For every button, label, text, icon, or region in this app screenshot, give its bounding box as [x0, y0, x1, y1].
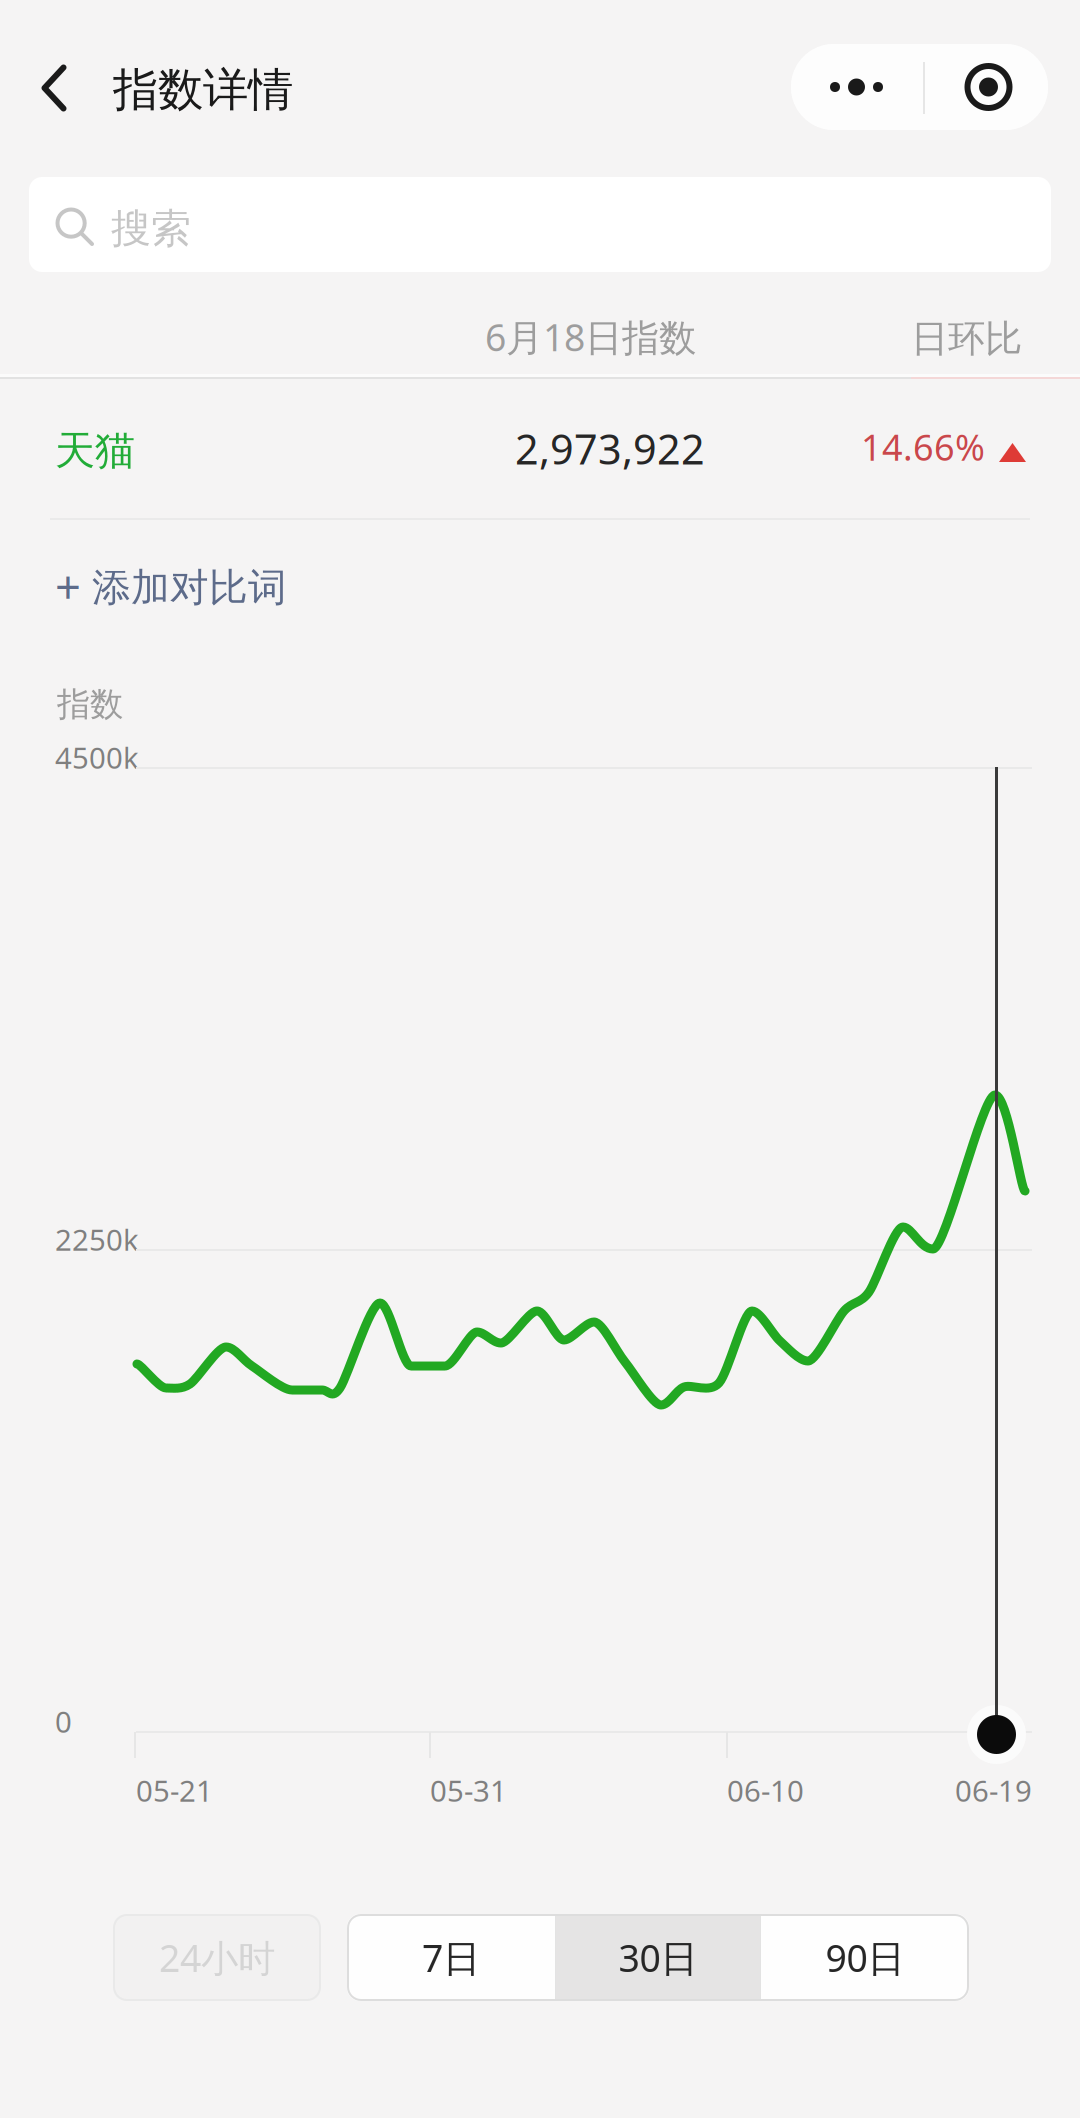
button[interactable]: 天猫	[0, 379, 1080, 518]
staticText: +	[55, 556, 81, 616]
staticText: 6月18日指数	[485, 312, 696, 362]
staticText: 0	[55, 1702, 72, 1741]
staticText: 天猫	[55, 426, 135, 475]
button[interactable]: Close mini program	[929, 44, 1048, 130]
staticText: 日环比	[911, 316, 1022, 362]
button[interactable]: Back	[6, 33, 102, 143]
button[interactable]: More options	[791, 44, 922, 130]
button[interactable]: 7日	[347, 1914, 555, 2001]
staticText: 06-19	[955, 1771, 1032, 1810]
button[interactable]: 30日	[556, 1914, 760, 2001]
button[interactable]: +	[0, 539, 400, 635]
staticText: 06-10	[727, 1771, 804, 1810]
staticText: 2250k	[55, 1220, 139, 1259]
button[interactable]: 90日	[761, 1914, 969, 2001]
button[interactable]: 搜索	[29, 177, 1051, 272]
staticText: 2,973,922	[515, 421, 705, 476]
staticText: 30日	[618, 1933, 697, 1982]
staticText: 24小时	[159, 1933, 275, 1982]
staticText: 14.66%	[861, 423, 985, 471]
staticText: 指数	[57, 684, 123, 725]
staticText: 05-31	[430, 1771, 507, 1810]
staticText: 05-21	[136, 1771, 213, 1810]
staticText: 4500k	[55, 738, 139, 777]
staticText: 指数详情	[113, 62, 293, 118]
staticText: 7日	[422, 1933, 480, 1982]
staticText: 添加对比词	[92, 564, 287, 611]
staticText: 90日	[825, 1933, 904, 1982]
staticText: 搜索	[111, 204, 191, 253]
button[interactable]: 24小时	[113, 1914, 321, 2001]
